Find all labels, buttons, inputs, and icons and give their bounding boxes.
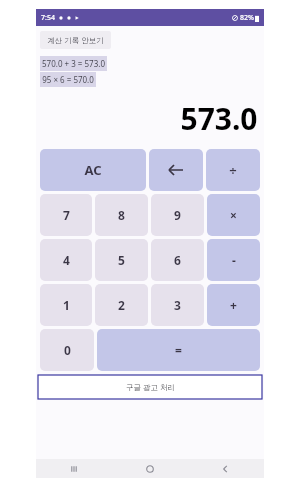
staticText: 9: [174, 207, 181, 223]
button[interactable]: 6: [151, 239, 204, 281]
button[interactable]: 구글 광고 처리: [38, 375, 262, 399]
staticText: 6: [174, 252, 181, 268]
button[interactable]: 570.0 + 3 = 573.0: [40, 56, 107, 71]
button[interactable]: 7: [40, 194, 92, 236]
button[interactable]: +: [207, 284, 260, 326]
staticText: 2: [118, 297, 125, 313]
button[interactable]: 계산 기록 안보기: [40, 31, 111, 49]
staticText: 0: [64, 342, 71, 358]
button[interactable]: 3: [151, 284, 204, 326]
button[interactable]: AC: [40, 149, 146, 191]
staticText: ÷: [229, 161, 237, 179]
staticText: AC: [84, 161, 102, 179]
staticText: 구글 광고 처리: [126, 382, 175, 392]
button[interactable]: =: [97, 329, 260, 371]
staticText: +: [230, 297, 237, 313]
staticText: 4: [63, 252, 70, 268]
button[interactable]: 4: [40, 239, 92, 281]
button[interactable]: 9: [151, 194, 204, 236]
button[interactable]: 0: [40, 329, 94, 371]
staticText: =: [175, 342, 182, 358]
staticText: 95 × 6 = 570.0: [42, 74, 94, 85]
staticText: ×: [230, 207, 237, 223]
staticText: 82%: [240, 13, 254, 23]
staticText: 3: [174, 297, 181, 313]
button[interactable]: ×: [207, 194, 260, 236]
button[interactable]: Home: [112, 459, 188, 478]
staticText: 1: [63, 297, 70, 313]
button[interactable]: ÷: [206, 149, 260, 191]
staticText: 573.0: [180, 98, 258, 139]
staticText: 570.0 + 3 = 573.0: [42, 58, 105, 69]
button[interactable]: Backspace: [149, 149, 203, 191]
button[interactable]: 5: [95, 239, 148, 281]
button[interactable]: Recents: [36, 459, 112, 478]
staticText: 계산 기록 안보기: [47, 35, 104, 45]
button[interactable]: 1: [40, 284, 92, 326]
button[interactable]: Back: [188, 459, 264, 478]
staticText: 5: [118, 252, 125, 268]
button[interactable]: 8: [95, 194, 148, 236]
button[interactable]: 95 × 6 = 570.0: [40, 72, 96, 87]
button[interactable]: 2: [95, 284, 148, 326]
staticText: 7: [63, 207, 70, 223]
staticText: 7:54: [41, 13, 55, 23]
staticText: 8: [118, 207, 125, 223]
staticText: -: [232, 252, 236, 268]
button[interactable]: -: [207, 239, 260, 281]
